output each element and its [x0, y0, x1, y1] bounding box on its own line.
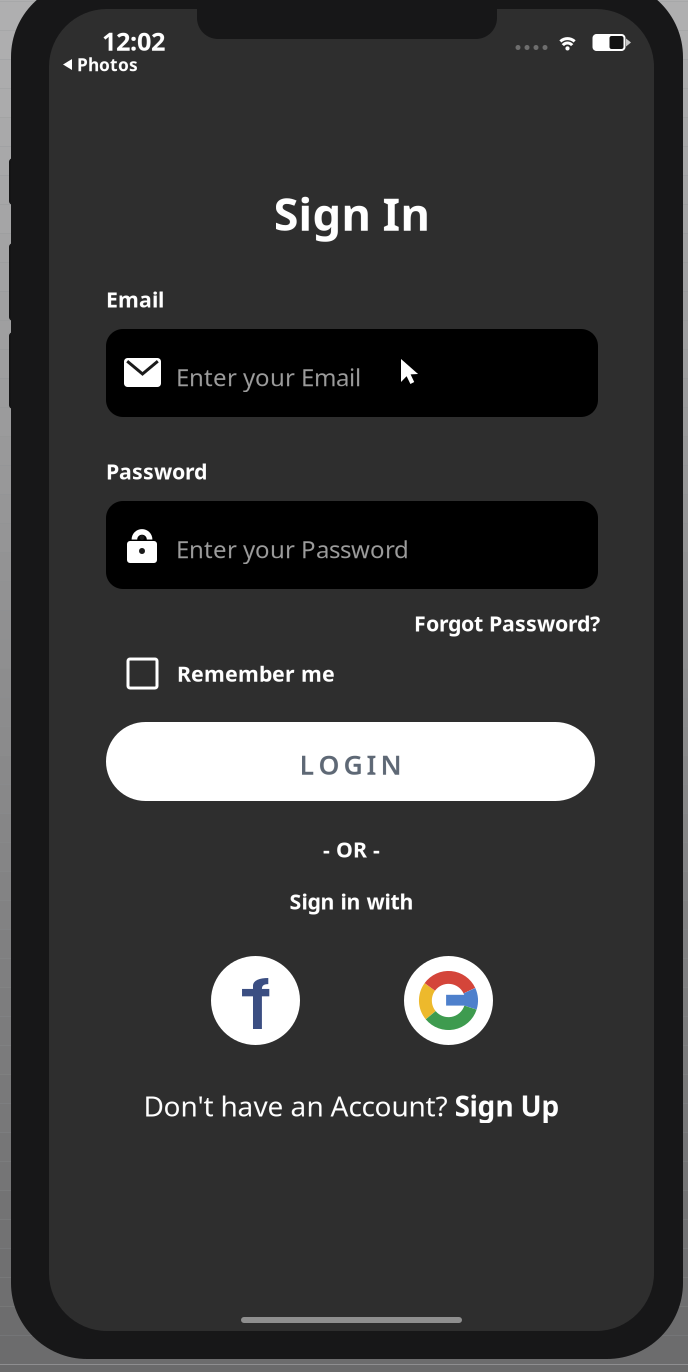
- staticText: Photos: [77, 53, 138, 76]
- staticText: L O G I N: [299, 747, 401, 782]
- staticText: Sign Up: [454, 1087, 559, 1124]
- staticText: Forgot Password?: [414, 609, 600, 637]
- button[interactable]: Sign Up: [454, 1087, 559, 1124]
- staticText: Password: [106, 457, 207, 485]
- button[interactable]: L O G I N: [106, 722, 595, 801]
- staticText: Remember me: [177, 659, 335, 688]
- staticText: Sign In: [273, 183, 429, 243]
- staticText: Email: [106, 285, 164, 313]
- staticText: Sign in with: [289, 887, 413, 915]
- button[interactable]: Sign in with Facebook: [211, 956, 300, 1045]
- button[interactable]: Sign in with Google: [404, 956, 493, 1045]
- button[interactable]: Forgot Password?: [414, 609, 600, 637]
- staticText: Enter your Email: [176, 361, 361, 393]
- button[interactable]: Remember me: [128, 659, 335, 688]
- staticText: 12:02: [102, 24, 165, 58]
- staticText: Enter your Password: [176, 533, 409, 565]
- staticText: Don't have an Account?: [143, 1087, 454, 1124]
- staticText: - OR -: [323, 835, 380, 863]
